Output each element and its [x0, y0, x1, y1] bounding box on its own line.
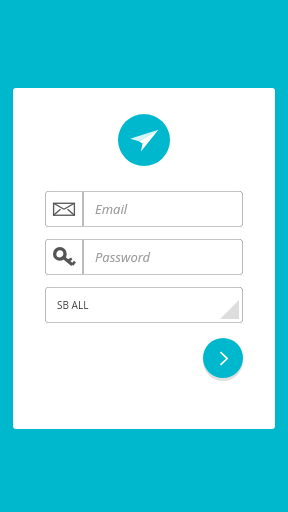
button[interactable]: Password [45, 239, 243, 275]
button[interactable]: SB ALL [45, 287, 243, 323]
button[interactable]: Submit [203, 338, 243, 378]
staticText: SB ALL [57, 298, 89, 312]
other: App logo [118, 114, 170, 166]
staticText: Email [95, 200, 128, 218]
button[interactable]: Email [45, 191, 243, 227]
staticText: Password [95, 248, 151, 266]
